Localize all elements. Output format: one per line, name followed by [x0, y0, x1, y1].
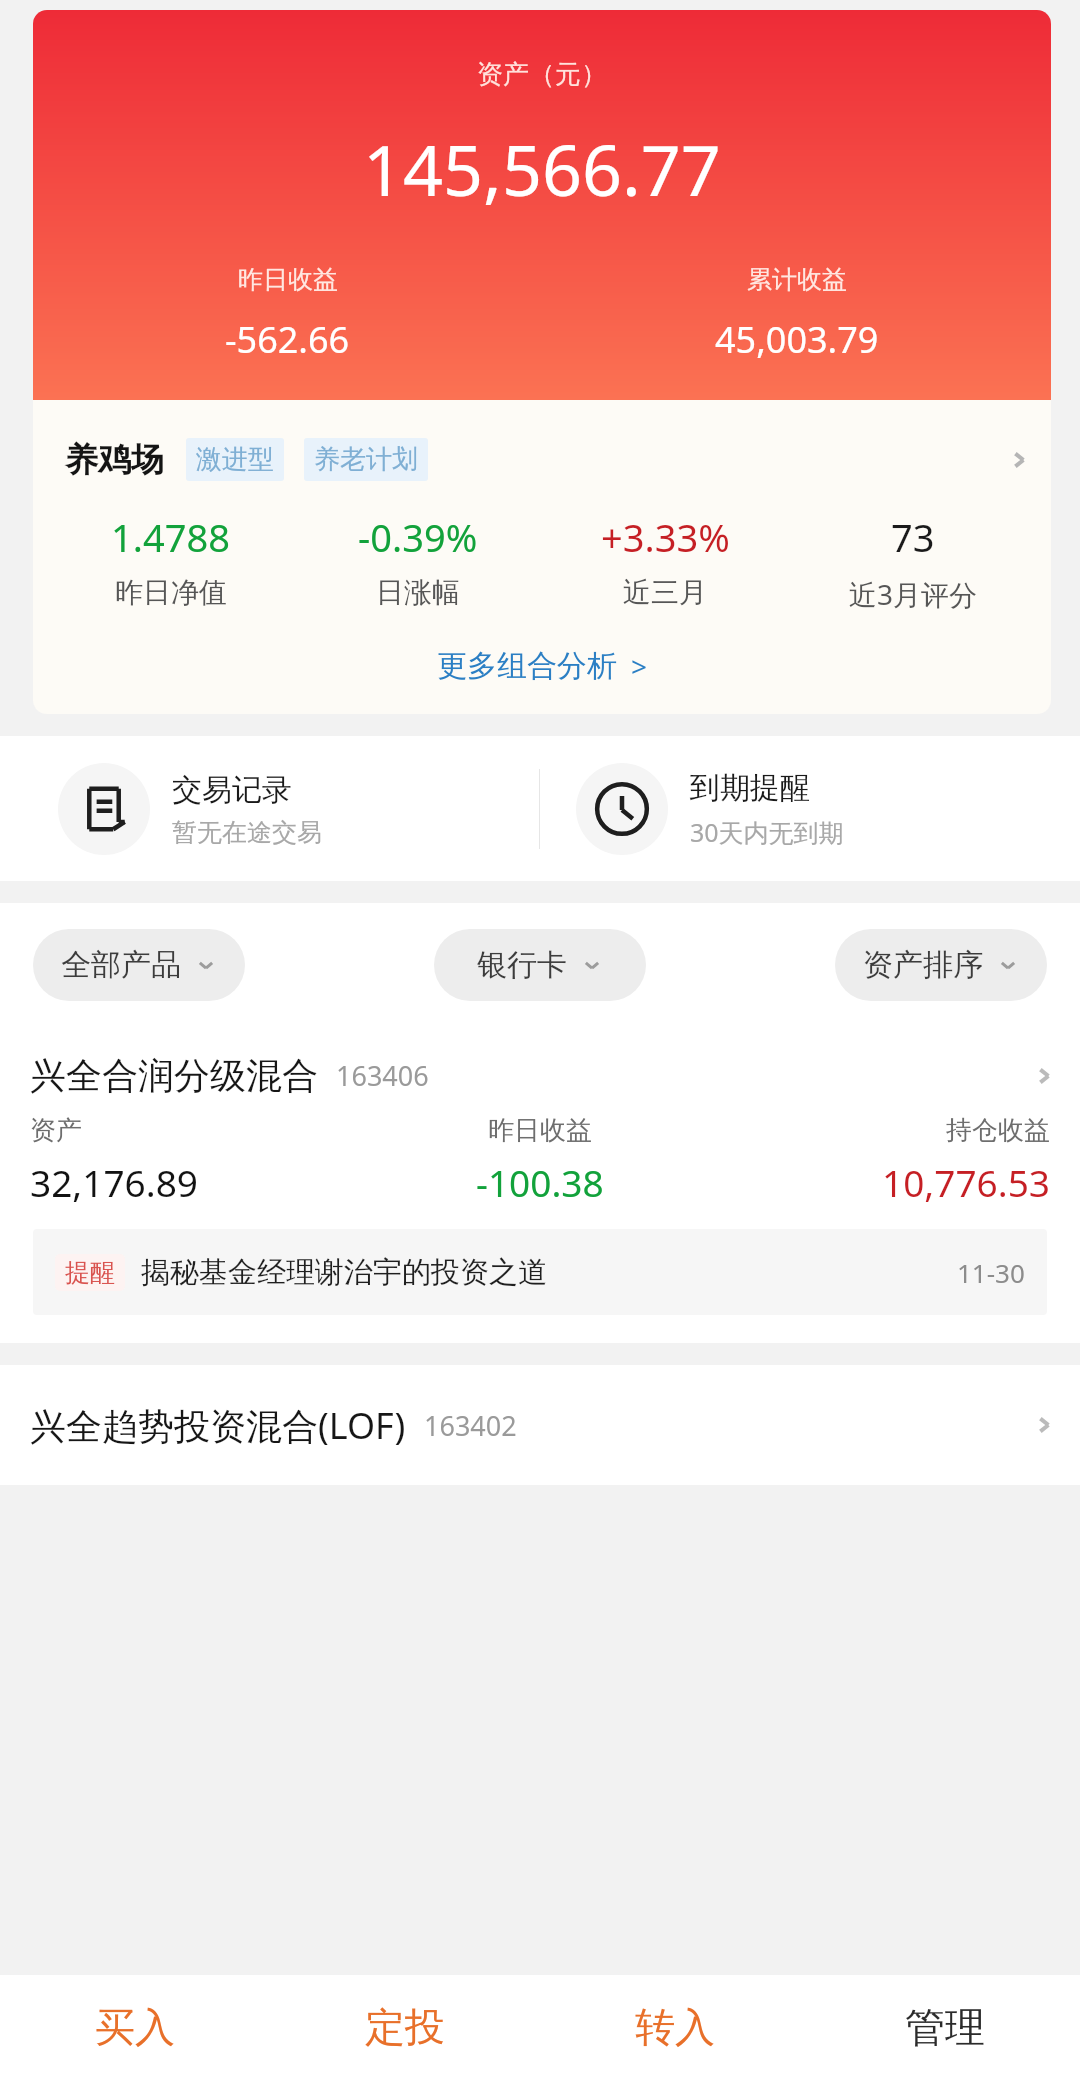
button[interactable]: Transaction records — [0, 763, 539, 855]
staticText: 近3月评分 — [849, 575, 978, 613]
other: Transaction records — [81, 786, 127, 832]
staticText: 1.4788 — [111, 511, 230, 563]
staticText: 激进型 — [196, 443, 274, 476]
staticText: 管理 — [905, 2002, 985, 2052]
button[interactable]: 兴全趋势投资混合(LOF) — [30, 1365, 1054, 1485]
staticText: 暂无在途交易 — [172, 817, 322, 848]
staticText: 养老计划 — [314, 443, 418, 476]
staticText: 揭秘基金经理谢治宇的投资之道 — [141, 1254, 547, 1291]
staticText: 资产排序 — [863, 946, 983, 984]
staticText: -0.39% — [358, 511, 478, 563]
other: Maturity reminder — [595, 782, 649, 836]
staticText: 兴全合润分级混合 — [30, 1053, 318, 1098]
staticText: > — [631, 647, 648, 685]
staticText: 10,776.53 — [882, 1157, 1050, 1207]
staticText: 到期提醒 — [690, 769, 810, 807]
staticText: 买入 — [95, 2002, 175, 2052]
staticText: 资产 — [30, 1114, 82, 1147]
staticText: 累计收益 — [747, 264, 847, 295]
staticText: 昨日收益 — [488, 1114, 592, 1147]
staticText: 全部产品 — [61, 946, 181, 984]
staticText: 交易记录 — [172, 771, 292, 809]
button[interactable]: 兴全合润分级混合 — [0, 1027, 1080, 1343]
staticText: 更多组合分析 — [437, 647, 617, 685]
staticText: 持仓收益 — [946, 1114, 1050, 1147]
button[interactable]: 全部产品 — [33, 929, 245, 1001]
staticText: -562.66 — [225, 315, 350, 364]
staticText: 昨日收益 — [238, 264, 338, 295]
staticText: 转入 — [635, 2002, 715, 2052]
staticText: 163406 — [336, 1057, 429, 1094]
staticText: 日涨幅 — [376, 575, 460, 610]
staticText: 45,003.79 — [715, 315, 879, 364]
button[interactable]: Maturity reminder — [540, 763, 1080, 855]
button[interactable]: 买入 — [0, 1975, 270, 2079]
staticText: 30天内无到期 — [690, 815, 844, 849]
staticText: 11-30 — [957, 1255, 1025, 1290]
button[interactable]: 激进型 — [196, 443, 274, 476]
staticText: -100.38 — [476, 1157, 604, 1207]
button[interactable]: 管理 — [810, 1975, 1080, 2079]
staticText: 73 — [891, 511, 935, 563]
button[interactable]: 资产（元） — [33, 10, 1051, 400]
staticText: 昨日净值 — [115, 575, 227, 610]
staticText: 定投 — [365, 2002, 445, 2052]
staticText: 养鸡场 — [65, 439, 164, 481]
staticText: 提醒 — [65, 1257, 115, 1288]
staticText: 银行卡 — [477, 946, 567, 984]
staticText: 145,566.77 — [363, 121, 721, 216]
button[interactable]: 提醒 — [33, 1229, 1047, 1315]
staticText: 资产（元） — [477, 58, 607, 91]
other: Open details — [1034, 1415, 1054, 1435]
staticText: 兴全趋势投资混合(LOF) — [30, 1401, 406, 1450]
other: Open details — [1009, 450, 1029, 470]
button[interactable]: 资产排序 — [835, 929, 1047, 1001]
staticText: 163402 — [424, 1407, 517, 1444]
staticText: 32,176.89 — [30, 1157, 198, 1207]
button[interactable]: 银行卡 — [434, 929, 646, 1001]
other: Open details — [1034, 1066, 1054, 1086]
staticText: 近三月 — [623, 575, 707, 610]
button[interactable]: 定投 — [270, 1975, 540, 2079]
button[interactable]: 养鸡场 — [33, 400, 1051, 714]
staticText: +3.33% — [601, 511, 730, 563]
button[interactable]: 养老计划 — [314, 443, 418, 476]
button[interactable]: 转入 — [540, 1975, 810, 2079]
button[interactable]: 更多组合分析 — [33, 647, 1051, 685]
